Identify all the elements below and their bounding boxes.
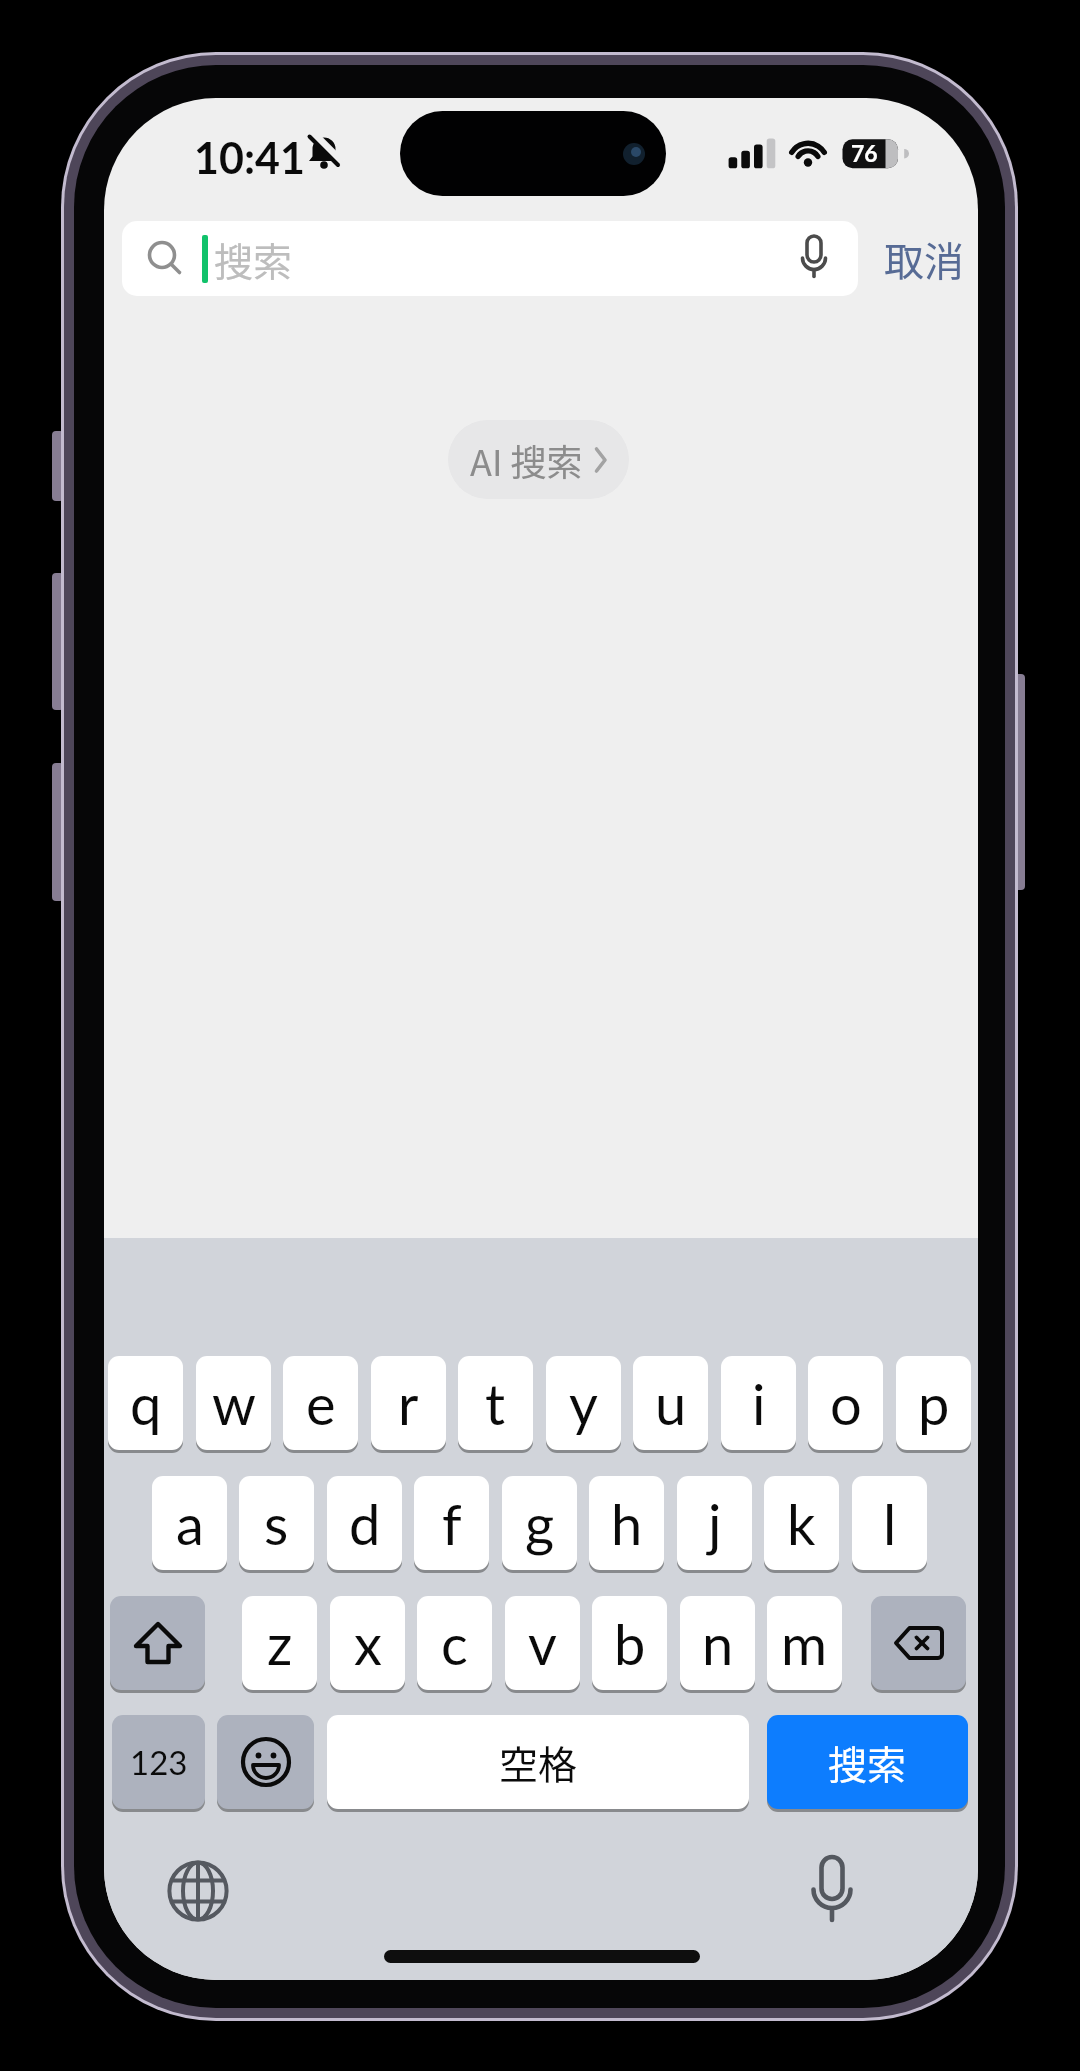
button[interactable]: o (808, 1356, 883, 1450)
button[interactable]: u (633, 1356, 708, 1450)
staticText: x (354, 1610, 382, 1677)
button[interactable]: 搜索 (767, 1715, 968, 1809)
button[interactable]: 搜索 (122, 221, 858, 296)
staticText: g (525, 1490, 555, 1557)
staticText: k (787, 1490, 816, 1557)
button[interactable]: g (502, 1476, 577, 1570)
button[interactable]: f (414, 1476, 489, 1570)
staticText: q (130, 1370, 162, 1437)
staticText: l (883, 1490, 897, 1557)
button[interactable]: d (327, 1476, 402, 1570)
button[interactable]: 空格 (327, 1715, 749, 1809)
staticText: y (569, 1370, 598, 1437)
button[interactable]: b (592, 1596, 667, 1690)
button[interactable]: e (283, 1356, 358, 1450)
button[interactable]: x (330, 1596, 405, 1690)
button[interactable] (166, 1859, 230, 1923)
button[interactable]: AI 搜索 (448, 420, 629, 499)
staticText: w (212, 1370, 256, 1437)
button[interactable]: v (505, 1596, 580, 1690)
staticText: 搜索 (828, 1734, 907, 1790)
button[interactable]: 取消 (884, 221, 964, 296)
staticText: 123 (130, 1742, 188, 1782)
staticText: f (442, 1490, 462, 1557)
staticText: t (485, 1370, 506, 1437)
staticText: n (702, 1610, 734, 1677)
staticText: 76 (851, 139, 878, 167)
staticText: 空格 (499, 1734, 578, 1790)
staticText: b (614, 1610, 646, 1677)
staticText: e (306, 1370, 336, 1437)
button[interactable] (794, 233, 834, 287)
staticText: m (781, 1610, 828, 1677)
button[interactable]: p (896, 1356, 971, 1450)
button[interactable] (871, 1596, 966, 1690)
button[interactable]: r (371, 1356, 446, 1450)
button[interactable]: n (680, 1596, 755, 1690)
button[interactable]: j (677, 1476, 752, 1570)
staticText: i (752, 1370, 766, 1437)
button[interactable] (110, 1596, 205, 1690)
button[interactable] (804, 1854, 864, 1934)
staticText: z (267, 1610, 293, 1677)
button[interactable]: c (417, 1596, 492, 1690)
staticText: s (264, 1490, 289, 1557)
button[interactable]: t (458, 1356, 533, 1450)
staticText: j (708, 1490, 722, 1557)
staticText: AI 搜索 (470, 434, 583, 486)
staticText: h (611, 1490, 643, 1557)
button[interactable]: s (239, 1476, 314, 1570)
button[interactable]: i (721, 1356, 796, 1450)
staticText: u (655, 1370, 687, 1437)
button[interactable]: 123 (112, 1715, 205, 1809)
button[interactable]: a (152, 1476, 227, 1570)
button[interactable]: m (767, 1596, 842, 1690)
staticText: c (441, 1610, 468, 1677)
staticText: o (830, 1370, 862, 1437)
button[interactable] (217, 1715, 314, 1809)
button[interactable]: k (764, 1476, 839, 1570)
staticText: d (349, 1490, 381, 1557)
staticText: p (918, 1370, 950, 1437)
button[interactable]: z (242, 1596, 317, 1690)
button[interactable]: q (108, 1356, 183, 1450)
staticText: a (176, 1490, 204, 1557)
button[interactable]: h (589, 1476, 664, 1570)
button[interactable]: l (852, 1476, 927, 1570)
button[interactable]: y (546, 1356, 621, 1450)
staticText: v (528, 1610, 557, 1677)
staticText: r (398, 1370, 419, 1437)
staticText: 取消 (884, 230, 964, 288)
button[interactable]: w (196, 1356, 271, 1450)
staticText: 10:41 (194, 132, 305, 184)
staticText: 搜索 (214, 231, 293, 287)
